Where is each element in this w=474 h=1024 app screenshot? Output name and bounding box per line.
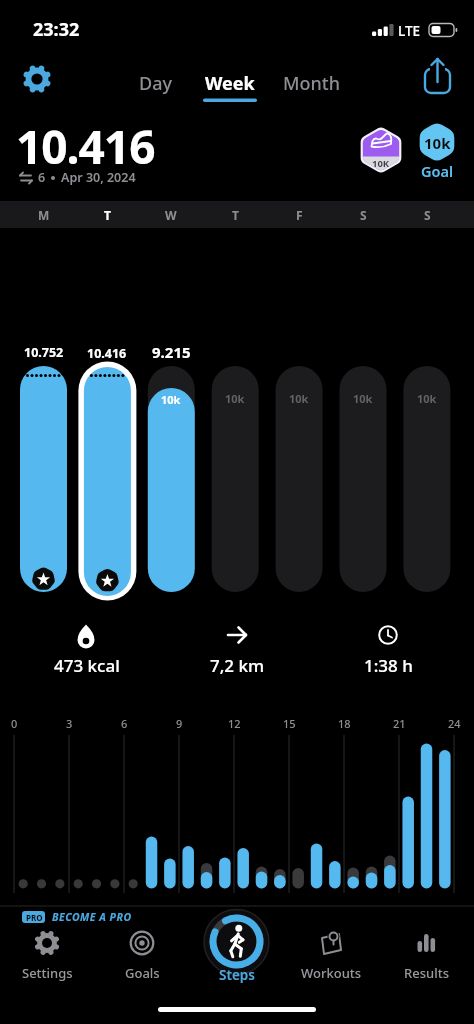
staticText: 6 (38, 169, 46, 186)
button[interactable] (337, 340, 389, 600)
button[interactable] (81, 340, 133, 600)
staticText: 10k (353, 391, 373, 406)
button[interactable] (197, 925, 277, 985)
staticText: 9.215 (152, 342, 191, 362)
staticText: Steps (219, 966, 255, 984)
staticText: 10k (161, 392, 181, 407)
staticText: 1:38 h (364, 654, 413, 677)
staticText: PRO (26, 912, 43, 923)
staticText: 18 (338, 716, 351, 731)
staticText: 15 (283, 716, 296, 731)
button[interactable] (18, 340, 70, 600)
staticText: Results (404, 964, 449, 982)
staticText: 10k (225, 391, 245, 406)
staticText: 473 kcal (54, 654, 120, 677)
staticText: Goal (421, 161, 454, 181)
staticText: 10k (424, 133, 451, 153)
staticText: Goals (125, 964, 160, 982)
button[interactable] (203, 62, 257, 102)
button[interactable] (145, 340, 197, 600)
button[interactable] (414, 120, 460, 182)
staticText: BECOME A PRO (52, 910, 132, 924)
staticText: 9 (176, 716, 183, 731)
staticText: Week (205, 71, 255, 96)
staticText: 3 (66, 716, 73, 731)
staticText: 7,2 km (210, 654, 265, 677)
staticText: 10K (372, 157, 390, 170)
staticText: Apr 30, 2024 (61, 169, 136, 186)
staticText: W (165, 207, 177, 223)
button[interactable] (291, 925, 371, 985)
staticText: 0 (11, 716, 18, 731)
button[interactable] (401, 340, 453, 600)
button[interactable] (386, 925, 466, 985)
staticText: M (38, 207, 50, 223)
button[interactable] (7, 925, 87, 985)
button[interactable] (420, 58, 456, 94)
staticText: Settings (22, 964, 73, 982)
staticText: 12 (228, 716, 241, 731)
staticText: T (104, 207, 111, 223)
button[interactable] (283, 62, 339, 96)
button[interactable] (132, 62, 178, 96)
button[interactable] (20, 62, 54, 96)
staticText: LTE (398, 22, 421, 40)
button[interactable] (102, 925, 182, 985)
staticText: Month (283, 71, 340, 96)
staticText: 10.416 (16, 115, 155, 178)
button[interactable] (16, 906, 136, 926)
staticText: 10.752 (24, 344, 64, 361)
staticText: 10k (417, 391, 437, 406)
staticText: 21 (393, 716, 406, 731)
staticText: S (424, 207, 431, 223)
staticText: F (296, 207, 303, 223)
staticText: T (232, 207, 239, 223)
staticText: 10.416 (87, 345, 127, 362)
staticText: 24 (448, 716, 461, 731)
button[interactable] (273, 340, 325, 600)
staticText: Day (139, 71, 172, 96)
staticText: 23:32 (33, 17, 80, 42)
staticText: 6 (121, 716, 128, 731)
button[interactable] (209, 340, 261, 600)
staticText: S (360, 207, 367, 223)
staticText: Workouts (301, 964, 362, 982)
staticText: 10k (289, 391, 309, 406)
